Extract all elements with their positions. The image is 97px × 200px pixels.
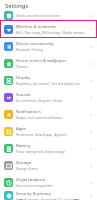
staticText: Battery	[16, 143, 31, 149]
staticText: Bluetooth, Printing	[16, 48, 43, 52]
staticText: Silence your device at set times	[16, 14, 60, 18]
staticText: Sounds	[16, 92, 31, 98]
staticText: Screen time management	[16, 184, 53, 188]
button[interactable]: Home screen & wallpaper	[0, 55, 97, 72]
staticText: Badges, Lock screen notifications	[16, 116, 63, 120]
button[interactable]: Device connectivity	[0, 38, 97, 55]
staticText: Face recognition, Fingerprint ID, Lock s…	[16, 198, 87, 200]
button[interactable]: Silence your device at set times	[0, 11, 97, 20]
staticText: Wi-Fi, Data usage, Wi-Fi settings, Mobil…	[16, 31, 85, 35]
staticText: Do not disturb, Ringtone, Vibrate	[16, 99, 63, 103]
staticText: Notifications	[16, 109, 41, 115]
staticText: Themes	[16, 65, 28, 69]
staticText: Home screen & wallpaper	[16, 58, 67, 64]
staticText: Security & privacy	[16, 191, 51, 197]
button[interactable]: Sounds	[0, 89, 97, 106]
staticText: Settings	[5, 2, 29, 10]
button[interactable]: Storage	[0, 157, 97, 174]
staticText: Digital balance	[16, 177, 46, 183]
button[interactable]: Apps	[0, 123, 97, 140]
button[interactable]: Wireless & networks	[0, 20, 97, 38]
staticText: Device connectivity	[16, 41, 54, 47]
staticText: Storage	[16, 160, 32, 166]
staticText: Brightness, Eye comfort, Text and displa…	[16, 82, 80, 86]
staticText: Permissions, Default apps, App twin	[16, 133, 67, 137]
staticText: Wireless & networks	[16, 24, 56, 30]
button[interactable]: Security & privacy	[0, 191, 97, 200]
staticText: Power saving mode, Battery usage	[16, 150, 65, 154]
staticText: Apps	[16, 126, 26, 132]
button[interactable]: Battery	[0, 140, 97, 157]
staticText: Storage cleaner	[16, 167, 39, 171]
staticText: Display	[16, 75, 31, 81]
button[interactable]: Digital balance	[0, 174, 97, 191]
button[interactable]: Notifications	[0, 106, 97, 123]
button[interactable]: Display	[0, 72, 97, 89]
